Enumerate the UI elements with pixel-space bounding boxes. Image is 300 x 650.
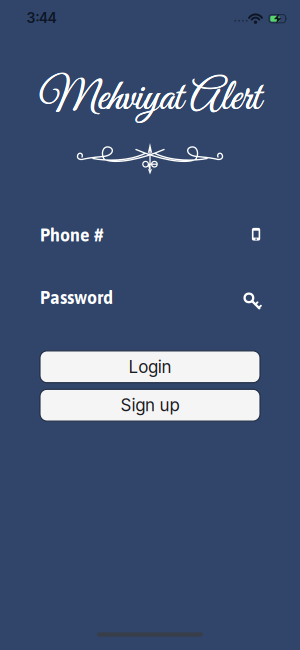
button[interactable]: Sign up <box>40 389 260 421</box>
staticText: Mehviyat Alert <box>39 72 261 126</box>
staticText: 3:44 <box>26 9 56 26</box>
staticText: Phone # <box>40 225 103 245</box>
button[interactable] <box>40 277 260 321</box>
button[interactable]: Login <box>40 351 260 383</box>
button[interactable] <box>40 213 260 257</box>
staticText: Login <box>128 357 172 377</box>
staticText: Sign up <box>121 395 179 415</box>
staticText: Mehviyat Alert <box>39 72 261 126</box>
staticText: Mehviyat Alert <box>39 72 261 126</box>
staticText: Password <box>40 287 113 308</box>
